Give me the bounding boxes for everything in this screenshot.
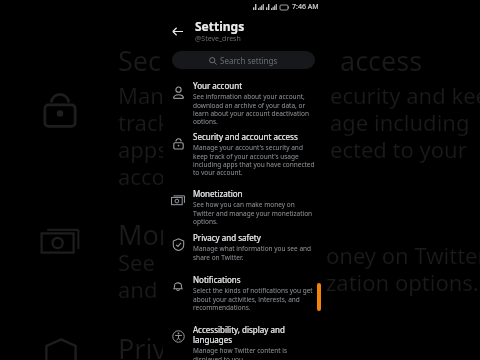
button[interactable]: Search settings bbox=[172, 51, 315, 69]
staticText: Search settings bbox=[220, 55, 278, 66]
staticText: Accessibility, display and languages bbox=[193, 324, 315, 345]
staticText: Security and bbox=[118, 42, 275, 79]
staticText: age including bbox=[330, 107, 470, 137]
button[interactable]: Security and account access bbox=[163, 131, 323, 175]
staticText: ecurity and keep bbox=[330, 80, 480, 110]
staticText: See how you can make money on Twitter an… bbox=[193, 200, 315, 226]
staticText: Mor bbox=[118, 216, 170, 253]
staticText: track bbox=[118, 107, 170, 137]
staticText: Notifications bbox=[193, 274, 241, 285]
button[interactable]: Your account bbox=[163, 80, 323, 124]
staticText: Manage how Twitter content is displayed … bbox=[193, 346, 315, 360]
staticText: Priv bbox=[118, 330, 167, 360]
staticText: Manage what information you see and shar… bbox=[193, 244, 315, 262]
staticText: Privacy and safety bbox=[193, 232, 261, 243]
staticText: Manage your account's security and keep … bbox=[193, 143, 315, 175]
button[interactable]: Back bbox=[167, 21, 187, 41]
staticText: @Steve_dresh bbox=[195, 34, 241, 44]
staticText: zation options. bbox=[326, 267, 479, 297]
staticText: See bbox=[118, 247, 155, 277]
staticText: acco bbox=[118, 161, 165, 191]
staticText: oney on Twitter bbox=[326, 240, 480, 270]
staticText: Monetization bbox=[193, 188, 243, 199]
staticText: See information about your account, down… bbox=[193, 92, 315, 124]
button[interactable]: Accessibility, display and languages bbox=[163, 324, 323, 360]
staticText: 7:46 AM bbox=[292, 2, 319, 12]
staticText: Your account bbox=[193, 80, 243, 91]
button[interactable]: Notifications bbox=[163, 274, 323, 318]
staticText: ected to your bbox=[330, 134, 467, 164]
staticText: and bbox=[118, 274, 158, 304]
staticText: Security and account access bbox=[193, 131, 298, 142]
button[interactable]: Monetization bbox=[163, 188, 323, 232]
staticText: apps bbox=[118, 134, 168, 164]
staticText: Select the kinds of notifications you ge… bbox=[193, 286, 315, 312]
button[interactable]: Privacy and safety bbox=[163, 232, 323, 276]
staticText: Settings bbox=[195, 18, 245, 34]
staticText: Man bbox=[118, 80, 164, 110]
staticText: access bbox=[340, 42, 423, 79]
